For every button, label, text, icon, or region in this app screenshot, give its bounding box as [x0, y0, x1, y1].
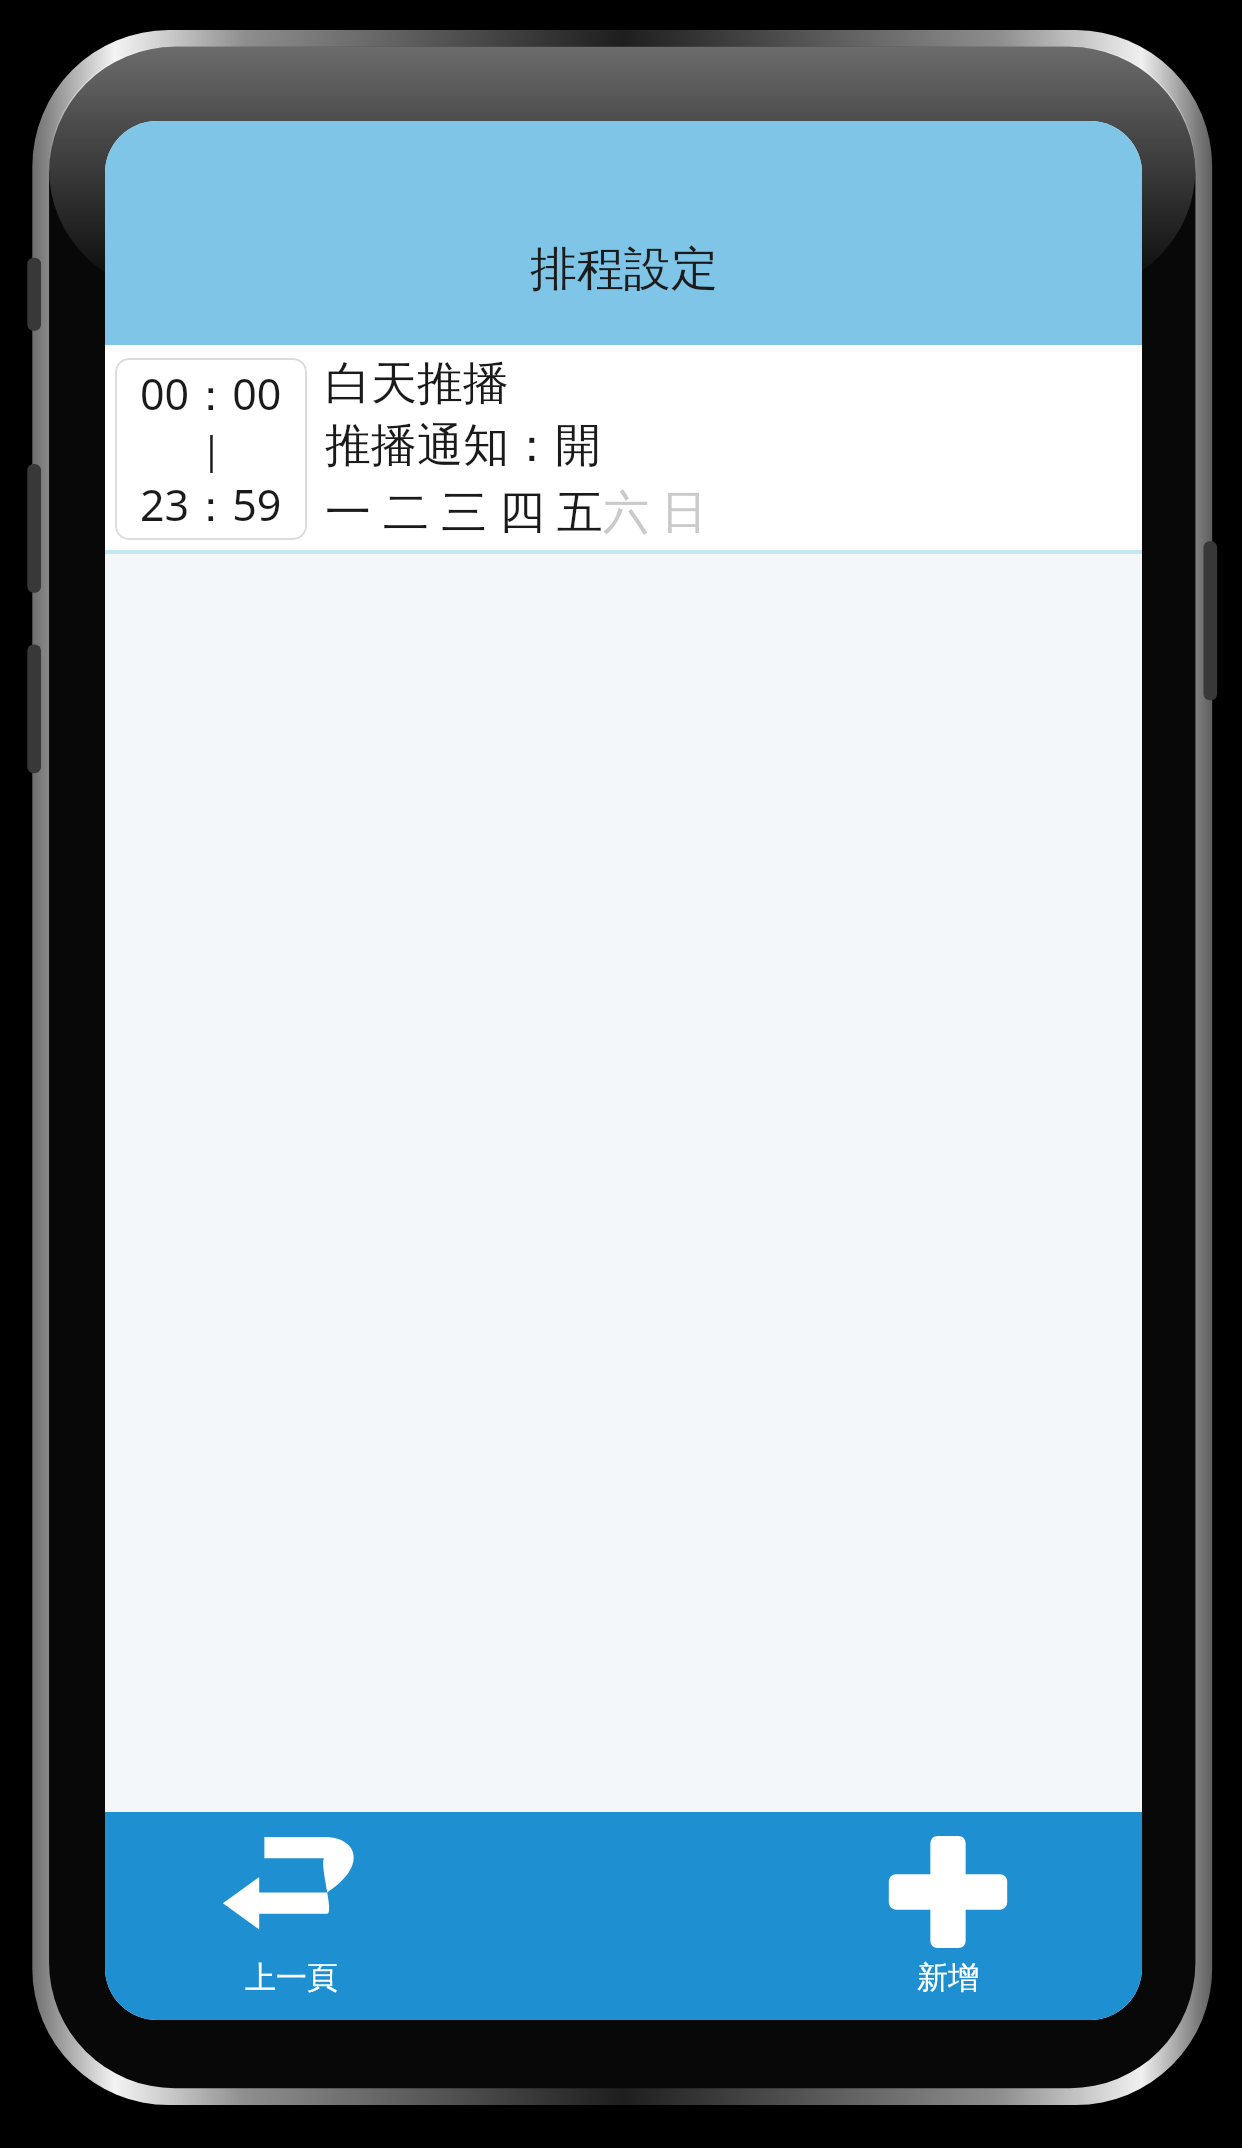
- staticText: 上一頁: [245, 1958, 338, 1997]
- staticText: 00：00: [140, 364, 282, 423]
- staticText: 一 二 三 四 五: [325, 479, 603, 542]
- button[interactable]: 上一頁: [217, 1836, 365, 1997]
- staticText: |: [201, 423, 222, 475]
- staticText: 白天推播: [325, 355, 509, 413]
- staticText: 排程設定: [530, 240, 718, 299]
- staticText: 23：59: [140, 475, 282, 534]
- staticText: 六 日: [603, 479, 707, 542]
- button[interactable]: 新增: [874, 1836, 1022, 1997]
- button[interactable]: 00：00: [105, 345, 1142, 554]
- staticText: 推播通知：開: [325, 417, 601, 475]
- staticText: 新增: [917, 1958, 979, 1997]
